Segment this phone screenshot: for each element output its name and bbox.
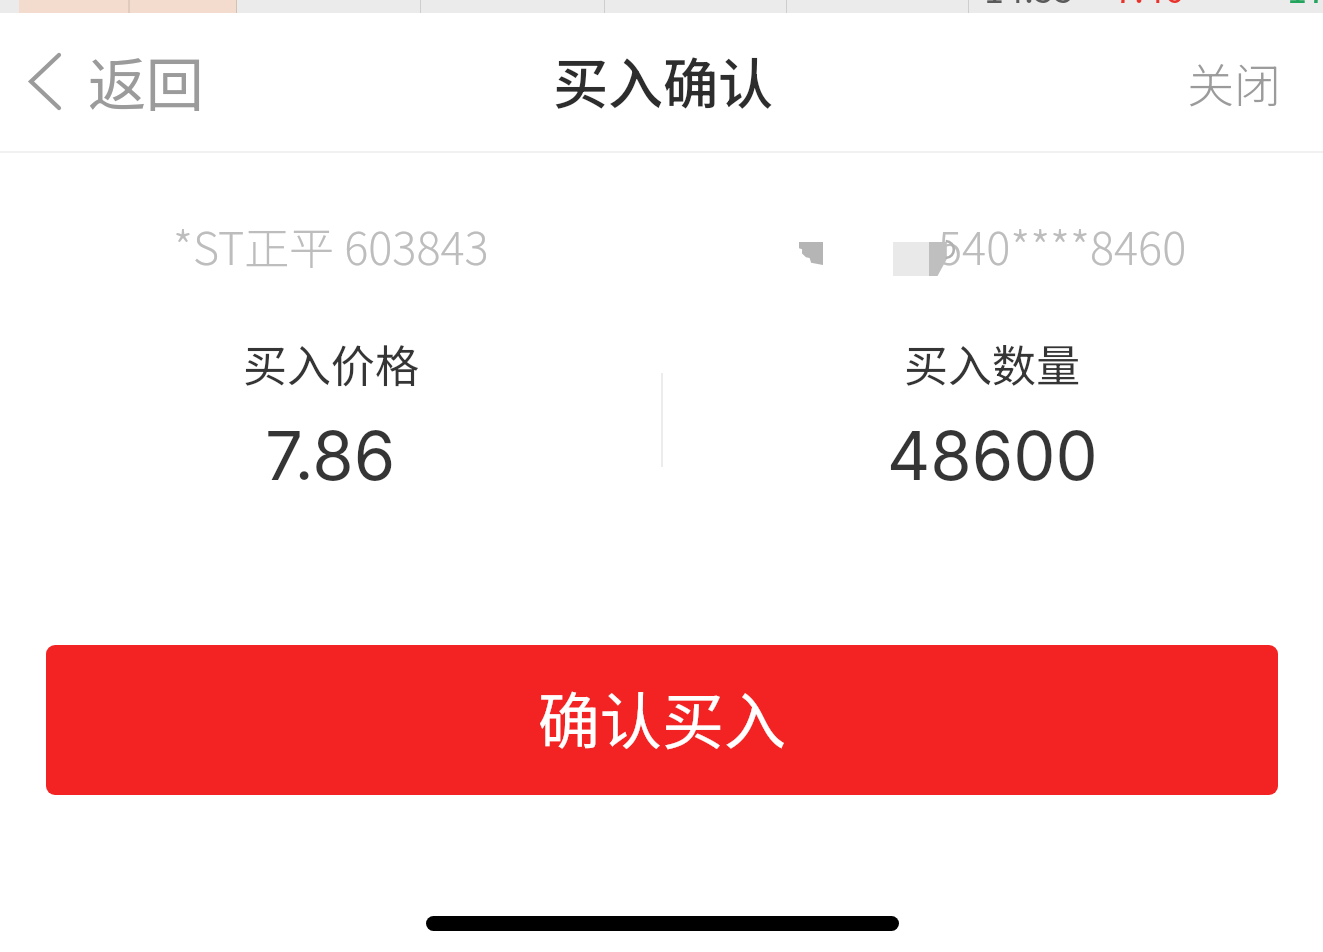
staticText: 48600	[887, 415, 1098, 496]
staticText: 确认买入	[538, 672, 787, 762]
staticText: 14:55	[984, 0, 1074, 11]
staticText: 7.86	[265, 415, 396, 496]
staticText: 7.46	[1114, 0, 1184, 11]
staticText: 买入确认	[553, 40, 774, 120]
staticText: 540****8460	[938, 213, 1187, 269]
button[interactable]: Back	[0, 17, 235, 145]
staticText: *ST正平 603843	[173, 213, 489, 269]
staticText: 买入价格	[243, 331, 419, 391]
button[interactable]: 关闭	[1147, 24, 1323, 140]
other: Back	[30, 54, 60, 109]
staticText: 买入数量	[904, 331, 1080, 391]
staticText: 返回	[88, 39, 205, 123]
button[interactable]: 确认买入	[46, 645, 1278, 795]
staticText: 17	[1287, 0, 1323, 11]
